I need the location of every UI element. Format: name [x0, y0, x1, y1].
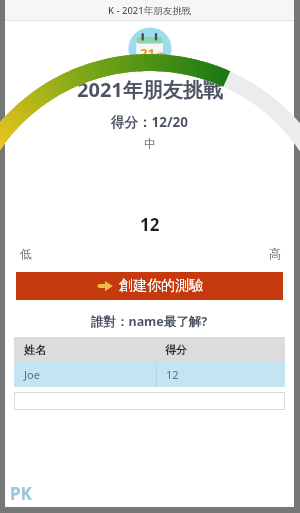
staticText: 中: [144, 136, 156, 151]
staticText: Joe: [24, 367, 40, 382]
button[interactable]: K - 2021年朋友挑戰: [5, 0, 294, 20]
staticText: 12: [140, 213, 160, 236]
staticText: 得分: [165, 343, 187, 357]
staticText: 高: [269, 246, 281, 261]
button[interactable]: Joe: [14, 362, 285, 387]
staticText: 姓名: [24, 343, 46, 357]
staticText: 21: [140, 44, 155, 62]
other: Challenge icon: [127, 26, 173, 72]
button[interactable]: 創建你的測驗: [16, 272, 283, 300]
staticText: PK: [10, 482, 32, 505]
staticText: 誰對：name最了解?: [91, 313, 208, 330]
staticText: 創建你的測驗: [119, 277, 203, 295]
staticText: 低: [20, 246, 32, 261]
staticText: K - 2021年朋友挑戰: [108, 4, 192, 17]
staticText: 得分：12/20: [111, 113, 188, 131]
staticText: 2021年朋友挑戰: [77, 76, 223, 103]
staticText: 12: [166, 367, 179, 382]
